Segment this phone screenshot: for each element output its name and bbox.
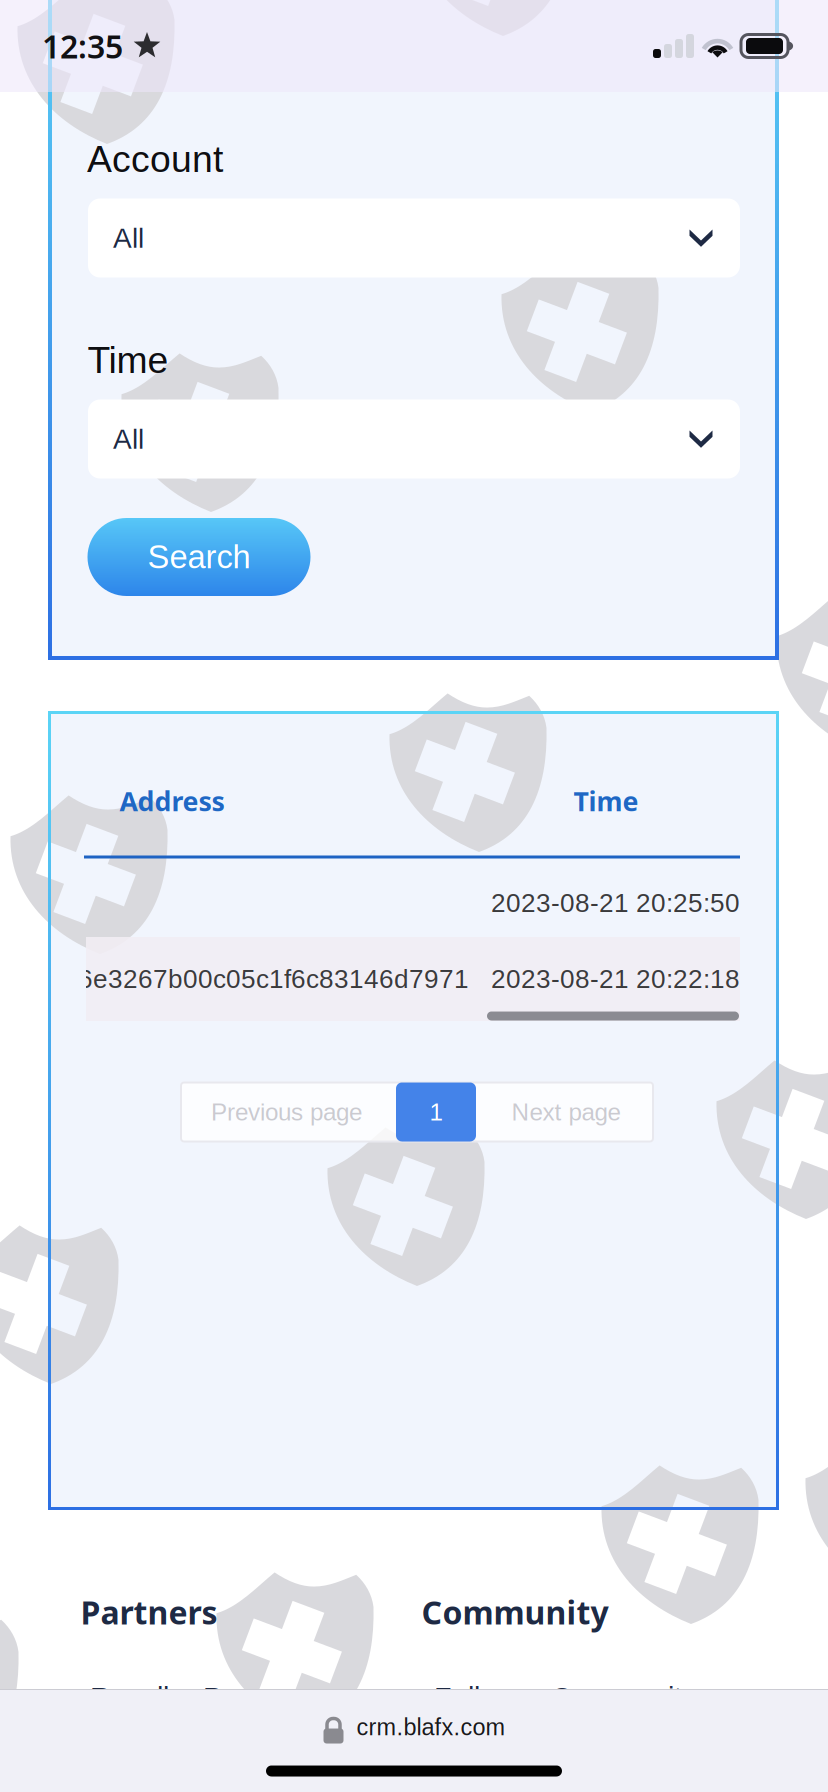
button[interactable]: 1: [396, 1082, 476, 1141]
staticText: Community: [421, 1590, 608, 1634]
staticText: 12:35: [42, 25, 123, 67]
staticText: Address: [119, 783, 224, 819]
button[interactable]: Partners: [80, 1590, 217, 1634]
staticText: crm.blafx.com: [356, 1714, 505, 1740]
staticText: Follower Community: [434, 1682, 696, 1714]
staticText: Time: [87, 339, 168, 381]
button[interactable]: All: [88, 198, 740, 277]
staticText: 2023-08-21 20:22:18: [491, 964, 740, 994]
button[interactable]: Follower Community: [434, 1682, 696, 1714]
button[interactable]: All: [88, 399, 740, 478]
button[interactable]: crm.blafx.com: [254, 1704, 574, 1750]
staticText: All: [113, 222, 144, 254]
staticText: Account: [87, 138, 223, 180]
staticText: Search: [147, 539, 250, 575]
button[interactable]: Next page: [479, 1082, 653, 1141]
staticText: 2023-08-21 20:25:50: [491, 888, 740, 918]
button[interactable]: Previous page: [181, 1082, 392, 1141]
staticText: Time: [573, 783, 638, 819]
staticText: Previous page: [211, 1098, 362, 1125]
button[interactable]: Community: [421, 1590, 608, 1634]
staticText: All: [113, 423, 144, 455]
staticText: 1: [429, 1098, 442, 1125]
staticText: 6e3267b00c05c1f6c83146d7971: [78, 964, 469, 994]
staticText: Partners: [80, 1590, 217, 1634]
button[interactable]: Search: [87, 518, 310, 596]
button[interactable]: Reseller Program: [90, 1682, 314, 1714]
staticText: Reseller Program: [90, 1682, 314, 1714]
staticText: Next page: [511, 1098, 620, 1125]
